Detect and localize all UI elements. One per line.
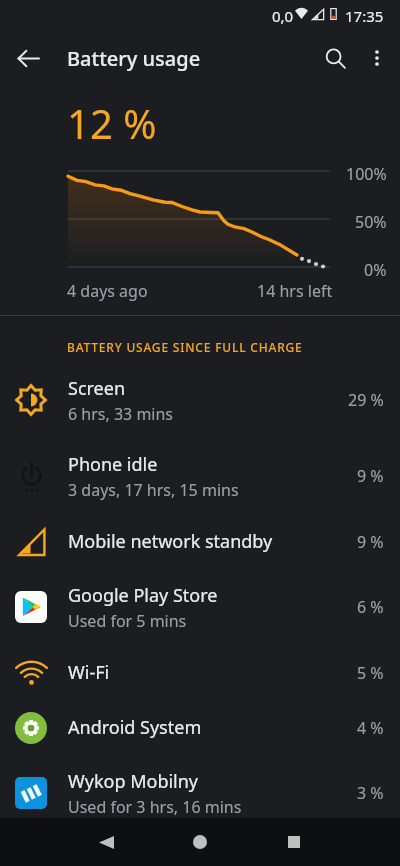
button[interactable]: Mobile network standby <box>0 514 400 569</box>
button[interactable]: Phone idle <box>0 438 400 514</box>
staticText: 4 days ago <box>67 280 148 302</box>
button[interactable]: Google Play Store <box>0 569 400 645</box>
button[interactable]: Wykop Mobilny <box>0 755 400 831</box>
staticText: 9 % <box>357 531 384 553</box>
button[interactable]: Recent apps <box>247 818 341 866</box>
staticText: 6 hrs, 33 mins <box>68 403 174 425</box>
staticText: 29 % <box>348 389 384 411</box>
staticText: 9 % <box>357 465 384 487</box>
staticText: 0,0 <box>272 6 294 26</box>
button[interactable]: Wi-Fi <box>0 645 400 700</box>
staticText: Google Play Store <box>68 583 218 608</box>
staticText: Screen <box>68 376 126 401</box>
button[interactable]: More options <box>355 36 399 80</box>
staticText: Android System <box>68 715 202 740</box>
staticText: Battery usage <box>67 45 201 72</box>
staticText: 14 hrs left <box>257 280 333 302</box>
staticText: 3 days, 17 hrs, 15 mins <box>68 479 239 501</box>
button[interactable]: Search <box>313 36 357 80</box>
staticText: Wi-Fi <box>68 660 110 685</box>
staticText: 50% <box>355 211 387 233</box>
staticText: Used for 3 hrs, 16 mins <box>68 796 242 818</box>
staticText: Mobile network standby <box>68 529 273 554</box>
staticText: Used for 5 mins <box>68 610 187 632</box>
button[interactable]: Back <box>59 818 153 866</box>
staticText: Phone idle <box>68 452 158 477</box>
staticText: 17:35 <box>345 6 384 26</box>
staticText: BATTERY USAGE SINCE FULL CHARGE <box>67 339 303 355</box>
staticText: 3 % <box>357 782 384 804</box>
staticText: 5 % <box>357 662 384 684</box>
button[interactable]: Screen <box>0 362 400 438</box>
staticText: 12 % <box>67 96 157 150</box>
staticText: 6 % <box>357 596 384 618</box>
staticText: 0% <box>364 259 387 281</box>
staticText: 100% <box>346 163 387 185</box>
staticText: Wykop Mobilny <box>68 769 199 794</box>
button[interactable]: Home <box>153 818 247 866</box>
staticText: 4 % <box>357 717 384 739</box>
button[interactable]: Navigate up <box>8 38 48 78</box>
button[interactable]: Android System <box>0 700 400 755</box>
